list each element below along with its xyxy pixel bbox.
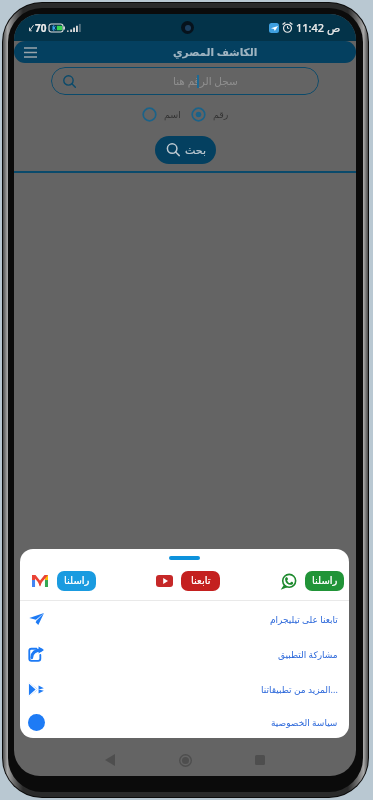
button[interactable]: راسلنا (279, 571, 344, 591)
button[interactable]: تابعنا على تيليجرام (20, 601, 349, 636)
button[interactable]: بحث (155, 136, 216, 164)
button[interactable]: مشاركة التطبيق (20, 636, 349, 671)
button[interactable]: تابعنا (155, 571, 220, 591)
button[interactable]: Home (173, 748, 197, 772)
staticText: بحث (185, 144, 206, 157)
button[interactable]: Back (98, 748, 122, 772)
staticText: رقم (213, 109, 229, 120)
staticText: تابعنا على تيليجرام (270, 613, 338, 625)
staticText: تابعنا (191, 575, 211, 587)
button[interactable]: Recents (248, 748, 272, 772)
staticText: مشاركة التطبيق (278, 648, 338, 660)
button[interactable]: سياسة الخصوصية (20, 706, 349, 738)
button[interactable]: راسلنا (31, 571, 96, 591)
staticText: سياسة الخصوصية (271, 716, 338, 728)
staticText: 11:42 ص (296, 20, 341, 35)
staticText: اسم (164, 109, 181, 120)
staticText: 70 (35, 21, 47, 35)
staticText: راسلنا (312, 575, 338, 587)
button[interactable]: رقم (191, 107, 229, 122)
staticText: سجل الرقم هنا (173, 74, 238, 88)
button[interactable]: سجل الرقم هنا (51, 67, 319, 95)
button[interactable]: المزيد من تطبيقاتنا... (20, 671, 349, 706)
button[interactable]: اسم (142, 107, 181, 122)
staticText: الكاشف المصري (173, 45, 258, 59)
button[interactable]: Menu (19, 41, 41, 63)
staticText: راسلنا (64, 575, 90, 587)
staticText: المزيد من تطبيقاتنا... (261, 683, 338, 695)
